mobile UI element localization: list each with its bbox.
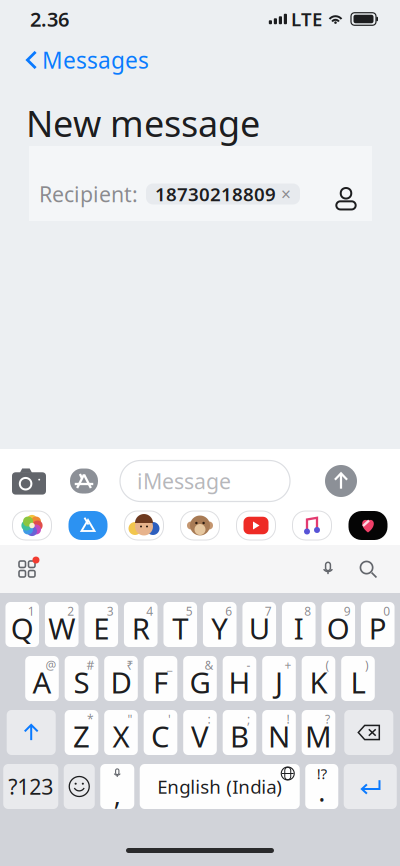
staticText: 2.36 — [30, 6, 69, 32]
staticText: 2 — [67, 603, 74, 619]
staticText: & — [205, 657, 214, 673]
button[interactable]: B — [223, 710, 256, 755]
button[interactable]: Comma — [100, 764, 134, 809]
staticText: _ — [167, 657, 172, 673]
button[interactable]: Animoji — [180, 511, 219, 540]
staticText: M — [305, 716, 332, 755]
staticText: ( — [326, 657, 330, 673]
staticText: @ — [46, 657, 57, 673]
button[interactable]: C — [144, 710, 177, 755]
staticText: 1 — [28, 603, 35, 619]
staticText: L — [350, 662, 365, 701]
staticText: ? — [325, 711, 330, 727]
button[interactable]: A — [25, 656, 59, 701]
button[interactable]: R — [124, 602, 157, 647]
staticText: 5 — [186, 603, 193, 619]
staticText: ! — [287, 711, 290, 727]
button[interactable]: Memoji — [124, 511, 163, 540]
staticText: English (India) — [157, 774, 282, 799]
button[interactable]: X — [104, 710, 138, 755]
button[interactable]: Period — [305, 764, 338, 809]
staticText: J — [275, 662, 283, 701]
staticText: P — [369, 608, 387, 647]
button[interactable]: Z — [65, 710, 98, 755]
button[interactable]: Delete — [344, 710, 393, 755]
button[interactable]: Return — [344, 764, 397, 809]
button[interactable]: YouTube — [236, 511, 275, 540]
staticText: " — [128, 711, 133, 727]
button[interactable]: Space — [140, 764, 300, 809]
button[interactable]: iMessage — [120, 460, 290, 501]
button[interactable]: Send — [325, 458, 357, 504]
staticText: G — [189, 662, 210, 701]
button[interactable]: J — [262, 656, 296, 701]
staticText: S — [73, 662, 89, 701]
button[interactable]: K — [302, 656, 335, 701]
staticText: , — [114, 777, 121, 812]
staticText: 3 — [107, 603, 114, 619]
staticText: ?123 — [8, 772, 53, 801]
button[interactable]: Add contact — [324, 172, 368, 216]
button[interactable]: I — [282, 602, 315, 647]
button[interactable]: Emoji — [64, 764, 95, 809]
staticText: Y — [211, 608, 228, 647]
staticText: H — [228, 662, 250, 701]
button[interactable]: M — [302, 710, 335, 755]
button[interactable]: Q — [5, 602, 39, 647]
button[interactable]: S — [65, 656, 98, 701]
staticText: E — [93, 608, 109, 647]
button[interactable]: N — [262, 710, 296, 755]
staticText: Z — [73, 716, 90, 755]
staticText: F — [153, 662, 168, 701]
button[interactable]: E — [84, 602, 118, 647]
staticText: ) — [365, 657, 369, 673]
staticText: A — [32, 662, 51, 701]
button[interactable]: P — [361, 602, 394, 647]
button[interactable]: L — [341, 656, 375, 701]
button[interactable]: Music — [292, 511, 331, 540]
staticText: Recipient: — [39, 180, 138, 208]
staticText: O — [327, 608, 350, 647]
staticText: I — [294, 608, 304, 647]
button[interactable]: Dictation — [308, 549, 348, 589]
staticText: 8 — [304, 603, 311, 619]
staticText: ; — [247, 711, 250, 727]
button[interactable]: Search — [348, 549, 388, 589]
button[interactable]: Apps — [70, 458, 98, 504]
button[interactable]: Camera — [12, 458, 46, 504]
button[interactable]: Numbers — [3, 764, 58, 809]
button[interactable]: W — [45, 602, 78, 647]
button[interactable]: T — [163, 602, 197, 647]
staticText: LTE — [291, 7, 322, 31]
button[interactable]: D — [104, 656, 138, 701]
button[interactable]: V — [183, 710, 217, 755]
button[interactable]: App Store — [68, 511, 107, 540]
staticText: R — [132, 608, 150, 647]
button[interactable]: G — [183, 656, 217, 701]
staticText: X — [112, 716, 129, 755]
button[interactable]: Messages — [0, 44, 400, 76]
button[interactable]: F — [144, 656, 177, 701]
staticText: iMessage — [137, 467, 231, 495]
staticText: !? — [317, 764, 327, 783]
staticText: - — [247, 657, 251, 673]
staticText: U — [249, 608, 270, 647]
button[interactable]: Shift — [7, 710, 56, 755]
button[interactable]: Y — [203, 602, 236, 647]
staticText: V — [191, 716, 209, 755]
button[interactable]: Photos — [12, 511, 51, 540]
staticText: 4 — [146, 603, 153, 619]
staticText: N — [268, 716, 290, 755]
staticText: D — [110, 662, 131, 701]
button[interactable]: Keyboard apps — [7, 549, 47, 589]
button[interactable]: U — [242, 602, 276, 647]
button[interactable]: H — [223, 656, 256, 701]
button[interactable]: O — [321, 602, 355, 647]
staticText: ' — [168, 711, 171, 727]
staticText: 7 — [265, 603, 272, 619]
staticText: × — [281, 182, 291, 205]
staticText: # — [87, 657, 95, 673]
button[interactable]: Fitness — [348, 511, 387, 540]
staticText: * — [87, 711, 94, 727]
staticText: C — [151, 716, 170, 755]
